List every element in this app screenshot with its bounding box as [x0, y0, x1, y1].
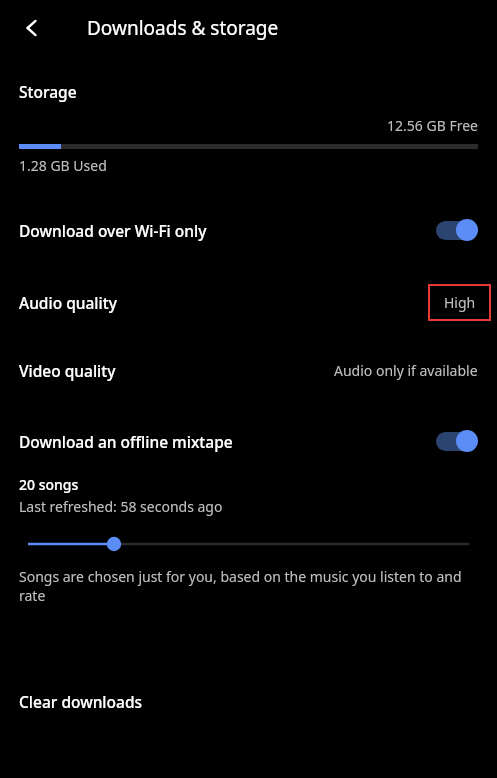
button[interactable]: Download an offline mixtape toggle	[434, 428, 480, 454]
staticText: 20 songs	[19, 475, 79, 494]
button[interactable]: Back	[8, 4, 56, 52]
button[interactable]: Download an offline mixtape	[0, 423, 497, 459]
button[interactable]: Clear downloads	[0, 686, 497, 716]
button[interactable]: Download over Wi-Fi only toggle	[434, 217, 480, 243]
button[interactable]: High	[428, 284, 491, 321]
staticText: 12.56 GB Free	[0, 116, 478, 135]
staticText: Songs are chosen just for you, based on …	[19, 567, 480, 605]
staticText: 1.28 GB Used	[19, 156, 107, 175]
button[interactable]: Audio quality	[0, 283, 497, 321]
staticText: Audio quality	[19, 292, 117, 313]
button[interactable]: Video quality	[0, 355, 497, 385]
staticText: Last refreshed: 58 seconds ago	[19, 497, 223, 516]
staticText: Download over Wi-Fi only	[19, 220, 207, 241]
staticText: High	[444, 293, 476, 312]
staticText: Downloads & storage	[87, 15, 279, 41]
button[interactable]: Download over Wi-Fi only	[0, 211, 497, 249]
staticText: Storage	[19, 81, 77, 102]
staticText: Download an offline mixtape	[19, 431, 233, 452]
button[interactable]	[0, 532, 497, 556]
staticText: Audio only if available	[334, 361, 478, 380]
staticText: Clear downloads	[19, 691, 143, 712]
staticText: Video quality	[19, 360, 116, 381]
